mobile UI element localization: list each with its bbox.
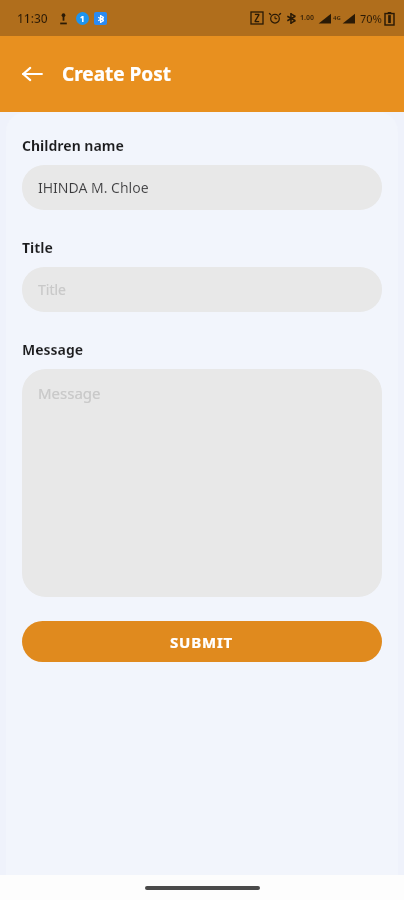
- staticText: Title: [22, 238, 53, 257]
- staticText: Title: [38, 280, 66, 299]
- staticText: 4G: [333, 14, 341, 22]
- staticText: IHINDA M. Chloe: [38, 178, 149, 197]
- button[interactable]: SUBMIT: [22, 621, 382, 662]
- staticText: 70%: [360, 11, 382, 26]
- button[interactable]: IHINDA M. Chloe: [22, 165, 382, 210]
- staticText: Children name: [22, 136, 124, 155]
- staticText: 1: [80, 13, 85, 24]
- button[interactable]: Back: [10, 52, 54, 96]
- staticText: Message: [38, 383, 101, 403]
- button[interactable]: Title: [22, 267, 382, 312]
- staticText: SUBMIT: [170, 632, 234, 652]
- staticText: Message: [22, 340, 84, 359]
- staticText: 11:30: [17, 10, 48, 26]
- staticText: 1.00: [300, 13, 314, 23]
- staticText: Create Post: [62, 61, 172, 87]
